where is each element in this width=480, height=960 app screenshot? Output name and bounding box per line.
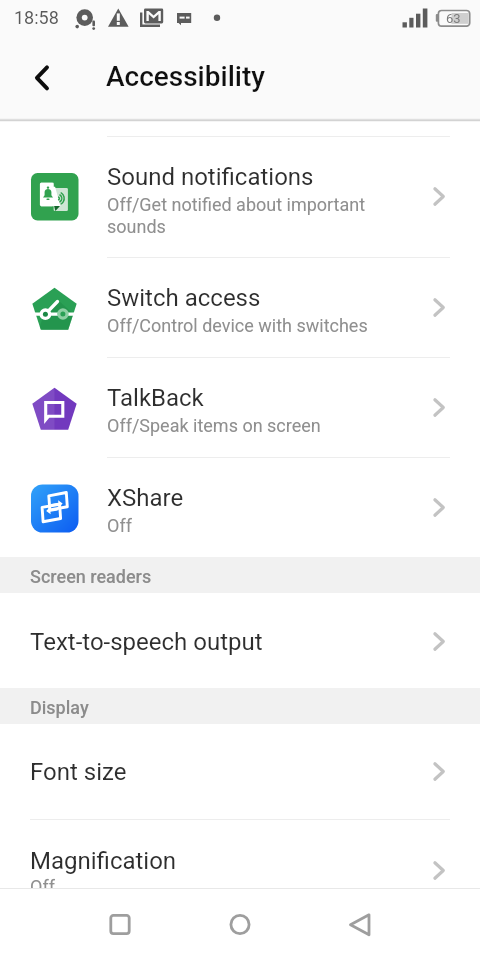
staticText: Off/Control device with switches (107, 315, 368, 336)
button[interactable] (0, 724, 480, 819)
button[interactable] (0, 136, 480, 257)
button[interactable]: Home (205, 890, 275, 960)
button[interactable] (0, 257, 480, 357)
button[interactable] (0, 457, 480, 557)
staticText: Off/Speak items on screen (107, 415, 321, 436)
staticText: Font size (30, 758, 127, 786)
button[interactable] (0, 593, 480, 688)
staticText: Display (30, 697, 89, 718)
staticText: Magnification (30, 847, 177, 875)
staticText: Accessibility (106, 60, 265, 93)
staticText: 63 (446, 11, 461, 26)
staticText: Text-to-speech output (30, 628, 263, 656)
button[interactable] (0, 819, 480, 888)
staticText: XShare (107, 484, 184, 512)
staticText: 18:58 (14, 7, 59, 28)
button[interactable]: Back (325, 890, 395, 960)
staticText: TalkBack (107, 384, 204, 412)
staticText: Off/Get notified about important sounds (107, 194, 366, 238)
staticText: Off (30, 876, 55, 897)
staticText: Switch access (107, 284, 261, 312)
button[interactable]: Navigate up (14, 52, 70, 108)
staticText: Sound notifications (107, 163, 314, 191)
staticText: Screen readers (30, 566, 152, 587)
button[interactable]: Recent apps (85, 890, 155, 960)
staticText: Off (107, 515, 132, 536)
button[interactable] (0, 357, 480, 457)
